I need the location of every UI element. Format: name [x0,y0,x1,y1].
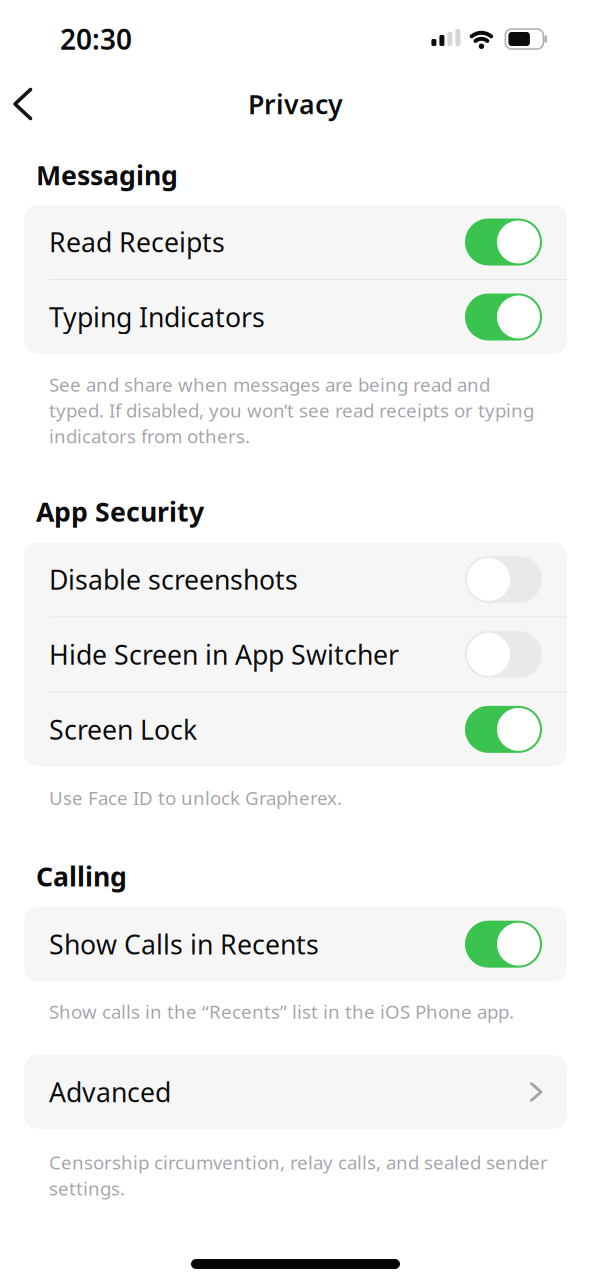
staticText: Show Calls in Recents [49,926,319,962]
staticText: Show calls in the “Recents” list in the … [49,999,514,1024]
button[interactable]: Read Receipts [465,218,542,265]
button[interactable]: Screen Lock [465,706,542,753]
button[interactable]: Hide Screen in App Switcher [465,631,542,678]
staticText: Typing Indicators [49,299,265,335]
staticText: 20:30 [60,20,132,58]
button[interactable]: Advanced [24,1055,567,1129]
button[interactable]: Typing Indicators [465,293,542,340]
staticText: settings. [49,1176,125,1200]
staticText: Censorship circumvention, relay calls, a… [49,1150,548,1175]
staticText: See and share when messages are being re… [49,372,490,397]
staticText: Messaging [36,157,178,193]
staticText: Read Receipts [49,224,225,260]
staticText: Calling [36,858,127,894]
staticText: Advanced [49,1074,171,1110]
staticText: Use Face ID to unlock Grapherex. [49,785,342,810]
staticText: Hide Screen in App Switcher [49,637,399,672]
staticText: Privacy [248,86,343,122]
staticText: Screen Lock [49,712,197,747]
staticText: typed. If disabled, you won’t see read r… [49,398,534,423]
staticText: Disable screenshots [49,562,298,597]
button[interactable]: Disable screenshots [465,556,542,603]
button[interactable]: Show Calls in Recents [465,921,542,968]
staticText: App Security [36,494,204,529]
button[interactable]: Back [0,84,42,123]
staticText: indicators from others. [49,424,250,448]
